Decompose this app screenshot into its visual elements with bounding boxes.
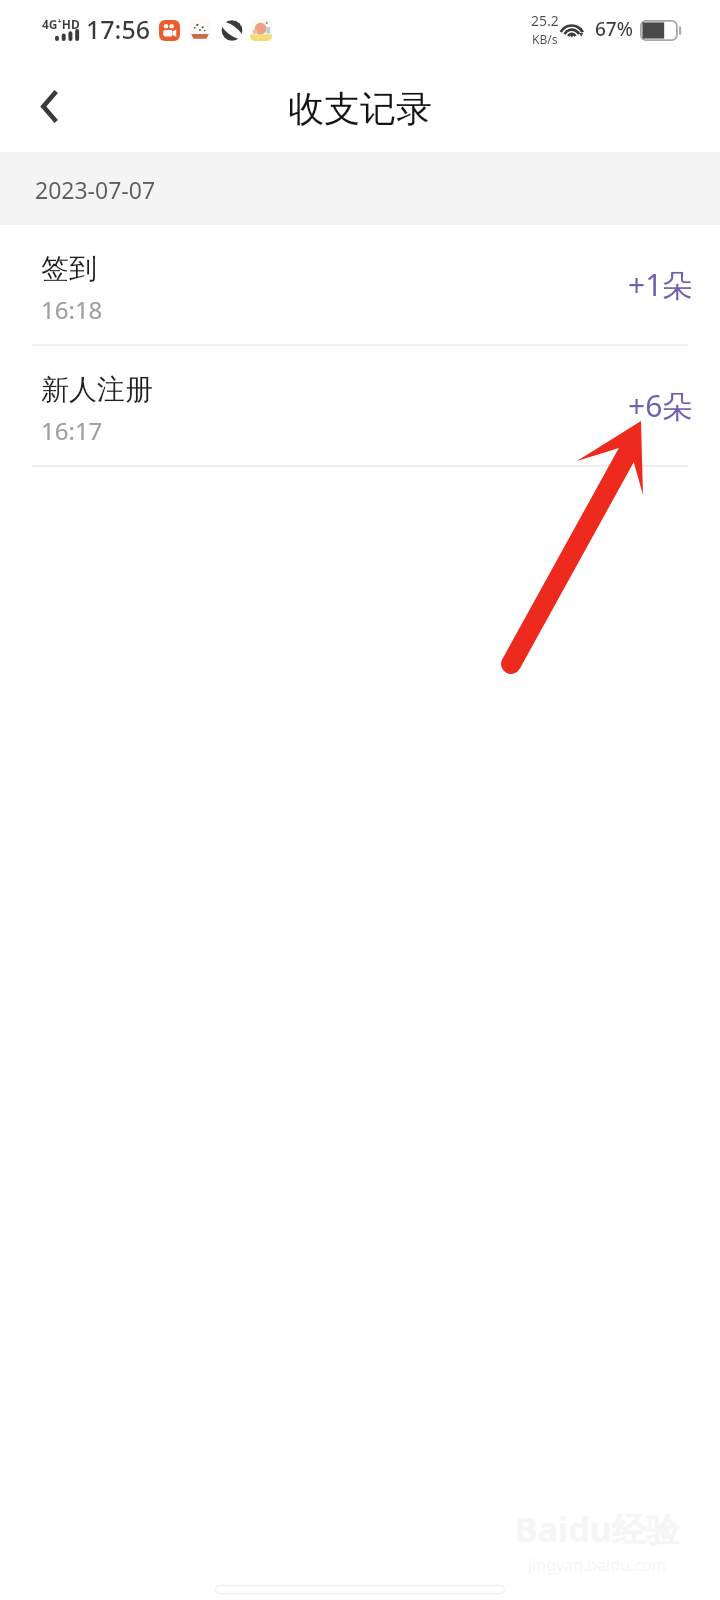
button[interactable]: 新人注册 bbox=[0, 346, 720, 465]
staticText: KB/s bbox=[532, 31, 558, 47]
staticText: 2023-07-07 bbox=[35, 174, 156, 205]
staticText: 67% bbox=[595, 16, 633, 42]
staticText: 4G⁺HD bbox=[42, 16, 79, 32]
staticText: 新人注册 bbox=[41, 372, 153, 407]
staticText: +1朵 bbox=[628, 264, 693, 305]
button[interactable]: 签到 bbox=[0, 225, 720, 344]
staticText: Baidu经验 bbox=[515, 1506, 680, 1552]
staticText: 收支记录 bbox=[288, 86, 432, 131]
staticText: 16:17 bbox=[41, 414, 103, 447]
button[interactable]: Back bbox=[21, 78, 77, 134]
staticText: 签到 bbox=[41, 251, 97, 286]
staticText: 16:18 bbox=[41, 293, 103, 326]
staticText: 17:56 bbox=[86, 12, 151, 46]
staticText: +6朵 bbox=[628, 385, 693, 426]
staticText: 25.2 bbox=[531, 11, 559, 30]
